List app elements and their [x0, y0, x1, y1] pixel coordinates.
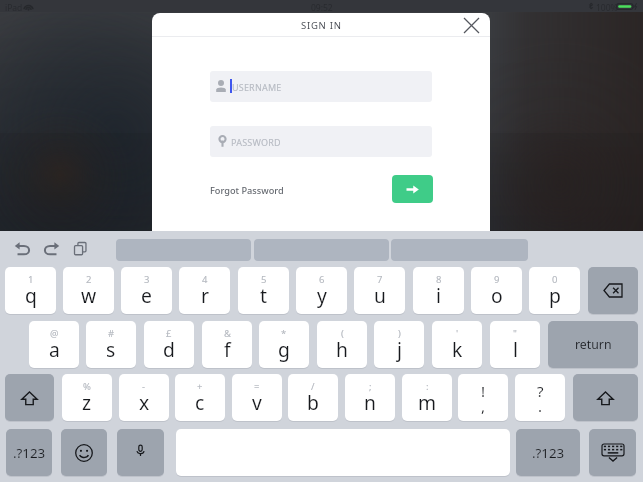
button[interactable]: Submit [392, 175, 433, 203]
button[interactable]: + [175, 374, 225, 421]
button[interactable]: 7 [354, 267, 405, 314]
staticText: . [538, 396, 543, 416]
button[interactable]: % [62, 374, 112, 421]
staticText: c [195, 389, 205, 415]
button[interactable]: Return [548, 321, 638, 368]
button[interactable]: 0 [529, 267, 580, 314]
button[interactable]: Redo [44, 242, 60, 255]
staticText: j [397, 336, 402, 362]
button[interactable]: ) [374, 321, 424, 368]
staticText: s [106, 336, 116, 362]
button[interactable]: ' [432, 321, 482, 368]
button[interactable]: - [119, 374, 169, 421]
staticText: - [142, 380, 146, 393]
button[interactable]: 5 [238, 267, 289, 314]
button[interactable]: Hide keyboard [589, 429, 636, 476]
button[interactable]: Shift [5, 374, 54, 421]
staticText: & [224, 327, 231, 340]
button[interactable]: ? [515, 374, 565, 421]
staticText: .?123 [13, 444, 46, 462]
button[interactable]: Emoji [61, 429, 107, 476]
staticText: ( [341, 327, 344, 340]
staticText: ) [398, 327, 401, 340]
staticText: return [575, 336, 612, 353]
button[interactable]: # [86, 321, 136, 368]
button[interactable]: 9 [471, 267, 522, 314]
staticText: k [452, 336, 463, 362]
staticText: f [224, 336, 231, 362]
staticText: : [426, 380, 429, 393]
button[interactable]: £ [144, 321, 194, 368]
staticText: n [364, 389, 376, 415]
staticText: , [481, 396, 486, 416]
staticText: v [252, 389, 262, 415]
staticText: y [317, 282, 327, 308]
button[interactable]: * [259, 321, 309, 368]
staticText: " [513, 327, 517, 340]
staticText: h [336, 336, 348, 362]
staticText: USERNAME [232, 81, 282, 93]
staticText: u [374, 282, 386, 308]
button[interactable]: & [202, 321, 252, 368]
button[interactable]: Numbers and symbols [6, 429, 52, 476]
staticText: .?123 [532, 444, 565, 462]
staticText: 0 [552, 273, 558, 286]
staticText: # [108, 327, 115, 340]
staticText: 9 [494, 273, 500, 286]
button[interactable]: ! [458, 374, 508, 421]
button[interactable]: @ [29, 321, 79, 368]
button[interactable]: : [402, 374, 452, 421]
button[interactable]: / [288, 374, 338, 421]
button[interactable]: Undo [14, 242, 30, 255]
button[interactable]: = [232, 374, 282, 421]
button[interactable]: Backspace [588, 267, 638, 314]
staticText: ? [537, 381, 544, 401]
button[interactable]: Dictate [117, 429, 164, 476]
button[interactable]: 8 [413, 267, 464, 314]
button[interactable]: 6 [296, 267, 347, 314]
staticText: o [491, 282, 503, 308]
staticText: 09:52 [311, 2, 333, 14]
staticText: l [513, 336, 518, 362]
button[interactable]: Numbers and symbols [516, 429, 580, 476]
button[interactable]: " [490, 321, 540, 368]
staticText: g [278, 336, 290, 362]
button[interactable]: 4 [179, 267, 230, 314]
staticText: ; [369, 380, 372, 393]
staticText: SIGN IN [301, 19, 342, 32]
staticText: r [201, 282, 209, 308]
button[interactable]: ; [345, 374, 395, 421]
staticText: * [281, 327, 287, 340]
button[interactable]: Shift [573, 374, 638, 421]
button[interactable]: Close [459, 14, 483, 37]
button[interactable]: ( [317, 321, 367, 368]
staticText: = [254, 380, 260, 393]
staticText: t [260, 282, 267, 308]
staticText: PASSWORD [231, 136, 281, 148]
staticText: m [418, 389, 437, 415]
button[interactable]: Paste [74, 242, 87, 255]
staticText: £ [166, 327, 172, 340]
staticText: / [311, 380, 315, 393]
staticText: x [139, 389, 150, 415]
button[interactable]: PASSWORD [210, 126, 432, 157]
staticText: a [49, 336, 60, 362]
staticText: 2 [86, 273, 92, 286]
staticText: z [82, 389, 92, 415]
staticText: q [25, 282, 37, 308]
button[interactable]: Forgot Password [210, 184, 284, 197]
staticText: p [549, 282, 561, 308]
staticText: 5 [261, 273, 267, 286]
staticText: 100% [596, 2, 618, 14]
button[interactable]: 2 [63, 267, 114, 314]
staticText: ' [456, 327, 459, 340]
button[interactable]: USERNAME [210, 71, 432, 102]
button[interactable]: 1 [5, 267, 56, 314]
staticText: e [141, 282, 152, 308]
staticText: 3 [144, 273, 150, 286]
button[interactable]: 3 [121, 267, 172, 314]
